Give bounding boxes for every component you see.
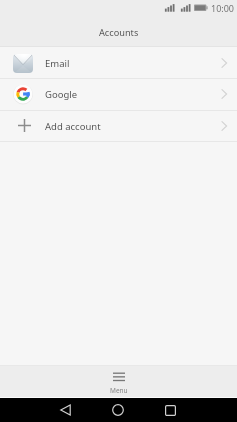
button[interactable]: Menu	[0, 366, 237, 397]
button[interactable]: Home	[103, 398, 133, 422]
button[interactable]: Email	[0, 47, 237, 78]
button[interactable]: Google	[0, 78, 237, 109]
staticText: Accounts	[99, 26, 139, 39]
staticText: Email	[45, 57, 70, 70]
button[interactable]: Add account	[0, 110, 237, 141]
button[interactable]: Back	[50, 398, 80, 422]
staticText: Menu	[110, 386, 128, 395]
staticText: Google	[45, 88, 78, 101]
staticText: 10:00	[211, 2, 235, 14]
staticText: Add account	[45, 120, 101, 133]
button[interactable]: Recent apps	[155, 398, 185, 422]
